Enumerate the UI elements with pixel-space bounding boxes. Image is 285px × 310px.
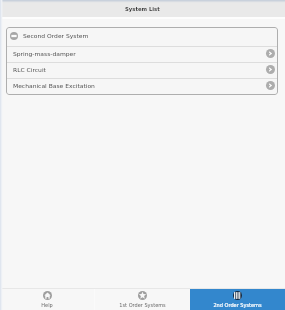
staticText: 1st Order Systems bbox=[119, 302, 166, 308]
other: Open RLC Circuit bbox=[266, 65, 275, 74]
staticText: 2nd Order Systems bbox=[213, 302, 262, 308]
staticText: System List bbox=[125, 6, 160, 12]
staticText: Help bbox=[41, 302, 53, 308]
button[interactable]: Spring-mass-damper bbox=[6, 47, 278, 62]
staticText: Second Order System bbox=[23, 32, 89, 39]
button[interactable]: 2nd Order Systems bbox=[190, 289, 285, 310]
staticText: RLC Circuit bbox=[13, 66, 46, 73]
button[interactable]: 1st Order Systems bbox=[95, 289, 190, 310]
button[interactable]: Mechanical Base Excitation bbox=[6, 79, 278, 94]
staticText: Spring-mass-damper bbox=[13, 50, 76, 57]
other: Open Mechanical Base Excitation bbox=[266, 81, 275, 90]
button[interactable]: Collapse Second Order System bbox=[6, 27, 278, 46]
other: Collapse Second Order System bbox=[10, 32, 18, 40]
button[interactable]: Help bbox=[0, 289, 94, 310]
button[interactable]: RLC Circuit bbox=[6, 63, 278, 78]
staticText: Mechanical Base Excitation bbox=[13, 82, 95, 89]
other: Open Spring-mass-damper bbox=[266, 49, 275, 58]
